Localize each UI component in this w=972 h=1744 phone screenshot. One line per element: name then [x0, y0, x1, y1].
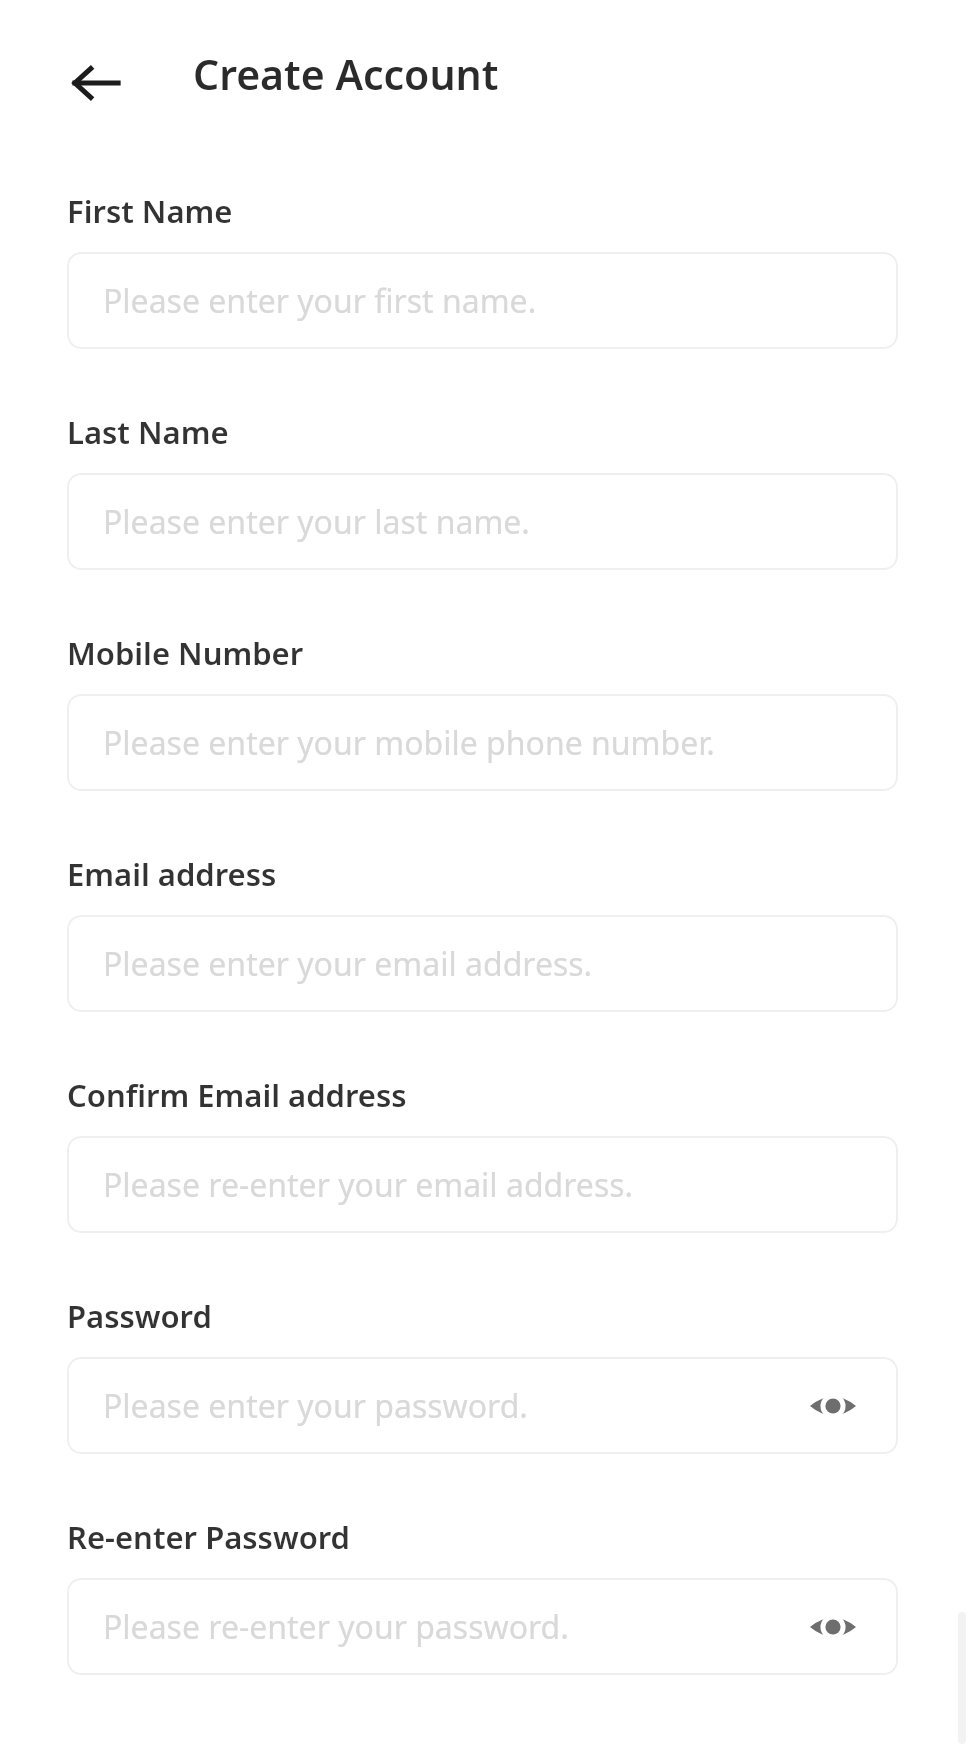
button[interactable]: Please enter your email address.	[67, 915, 898, 1012]
staticText: Please enter your mobile phone number.	[103, 721, 715, 765]
staticText: Confirm Email address	[67, 1074, 407, 1116]
button[interactable]: Show password	[804, 1377, 862, 1435]
staticText: First Name	[67, 190, 233, 232]
button[interactable]: Show password	[804, 1598, 862, 1656]
staticText: Re-enter Password	[67, 1516, 350, 1558]
button[interactable]: Please enter your password.	[67, 1357, 898, 1454]
staticText: Last Name	[67, 411, 229, 453]
button[interactable]: Back	[56, 42, 138, 124]
staticText: Create Account	[193, 46, 499, 102]
staticText: Please re-enter your email address.	[103, 1163, 634, 1207]
button[interactable]: Please enter your mobile phone number.	[67, 694, 898, 791]
button[interactable]: Please re-enter your password.	[67, 1578, 898, 1675]
button[interactable]: Please enter your first name.	[67, 252, 898, 349]
staticText: Password	[67, 1295, 212, 1337]
staticText: Email address	[67, 853, 277, 895]
button[interactable]: Please enter your last name.	[67, 473, 898, 570]
staticText: Please enter your password.	[103, 1384, 528, 1428]
staticText: Please enter your email address.	[103, 942, 593, 986]
staticText: Mobile Number	[67, 632, 304, 674]
staticText: Please enter your first name.	[103, 279, 537, 323]
staticText: Please enter your last name.	[103, 500, 530, 544]
button[interactable]: Please re-enter your email address.	[67, 1136, 898, 1233]
staticText: Please re-enter your password.	[103, 1605, 569, 1649]
